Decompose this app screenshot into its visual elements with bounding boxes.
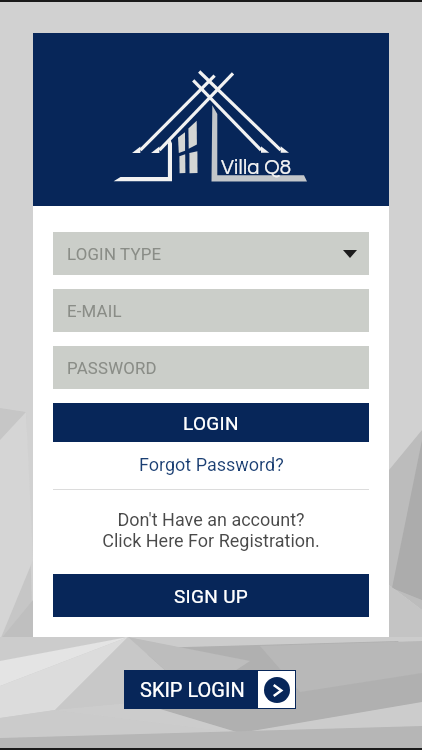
- staticText: LOGIN TYPE: [67, 244, 162, 264]
- button[interactable]: Don't Have an account? Click Here For Re…: [53, 509, 369, 551]
- button[interactable]: LOGIN: [53, 403, 369, 442]
- button[interactable]: SIGN UP: [53, 574, 369, 617]
- other: Open login type list: [343, 250, 357, 258]
- button[interactable]: E-MAIL: [53, 289, 369, 332]
- other: Skip login: [258, 671, 295, 708]
- staticText: Forgot Password?: [139, 454, 284, 475]
- staticText: E-MAIL: [67, 301, 122, 321]
- button[interactable]: PASSWORD: [53, 346, 369, 389]
- staticText: PASSWORD: [67, 358, 157, 378]
- button[interactable]: SKIP LOGIN: [124, 670, 296, 709]
- staticText: SKIP LOGIN: [140, 678, 245, 701]
- staticText: LOGIN: [183, 412, 239, 434]
- staticText: Villa Q8: [221, 157, 292, 178]
- button[interactable]: LOGIN TYPE: [53, 232, 369, 275]
- staticText: SIGN UP: [174, 585, 249, 607]
- button[interactable]: Forgot Password?: [53, 442, 369, 486]
